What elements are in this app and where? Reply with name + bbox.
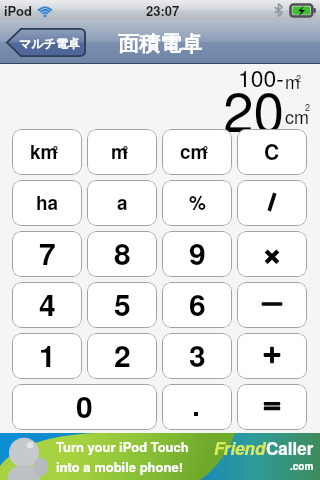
staticText: iPod [4,1,32,20]
staticText: 2 [296,72,302,85]
staticText: 23:07 [146,1,180,20]
button[interactable]: ha [12,180,82,226]
staticText: m [285,68,300,94]
staticText: 面積電卓 [118,31,202,57]
staticText: 2 [53,143,59,156]
staticText: C [264,136,280,166]
button[interactable] [162,384,232,430]
button[interactable]: 5 [87,282,157,328]
staticText: 9 [189,231,206,274]
button[interactable]: 6 [162,282,232,328]
staticText: Turn your iPod Touch [56,437,189,456]
button[interactable] [237,333,307,379]
staticText: 6 [189,282,206,325]
staticText: 2 [203,143,209,156]
staticText: 4 [39,282,56,325]
staticText: 3 [189,333,206,376]
button[interactable]: 3 [162,333,232,379]
staticText: 20 [223,69,285,134]
button[interactable]: 4 [12,282,82,328]
staticText: .com [290,459,314,473]
button[interactable]: cm [162,129,232,175]
staticText: km [30,138,58,165]
staticText: m [111,138,128,165]
button[interactable]: 2 [87,333,157,379]
button[interactable]: 8 [87,231,157,277]
button[interactable]: C [237,129,307,175]
staticText: 5 [114,282,131,325]
staticText: Friend [214,436,266,460]
button[interactable]: Advertisement: FriendCaller [0,433,320,480]
staticText: 2 [114,333,131,376]
button[interactable]: 7 [12,231,82,277]
staticText: 1 [39,333,56,376]
button[interactable]: m [87,129,157,175]
staticText: % [189,189,206,216]
button[interactable]: 0 [12,384,157,430]
staticText: a [117,189,128,216]
staticText: 100- [238,61,285,94]
button[interactable]: km [12,129,82,175]
staticText: 0 [76,384,93,427]
staticText: ha [36,189,59,216]
button[interactable]: % [162,180,232,226]
staticText: 8 [114,231,131,274]
button[interactable]: 1 [12,333,82,379]
button[interactable]: a [87,180,157,226]
staticText: cm [180,138,208,165]
button[interactable] [237,231,307,277]
button[interactable] [237,282,307,328]
staticText: into a mobile phone! [56,457,183,476]
button[interactable] [237,180,307,226]
staticText: Caller [266,436,314,460]
staticText: 2 [305,101,311,114]
staticText: cm [285,103,309,129]
staticText: 2 [123,143,129,156]
staticText: 7 [39,231,56,274]
button[interactable]: 9 [162,231,232,277]
button[interactable] [237,384,307,430]
staticText: マルチ電卓 [19,36,80,51]
button[interactable]: マルチ電卓 [6,28,86,57]
